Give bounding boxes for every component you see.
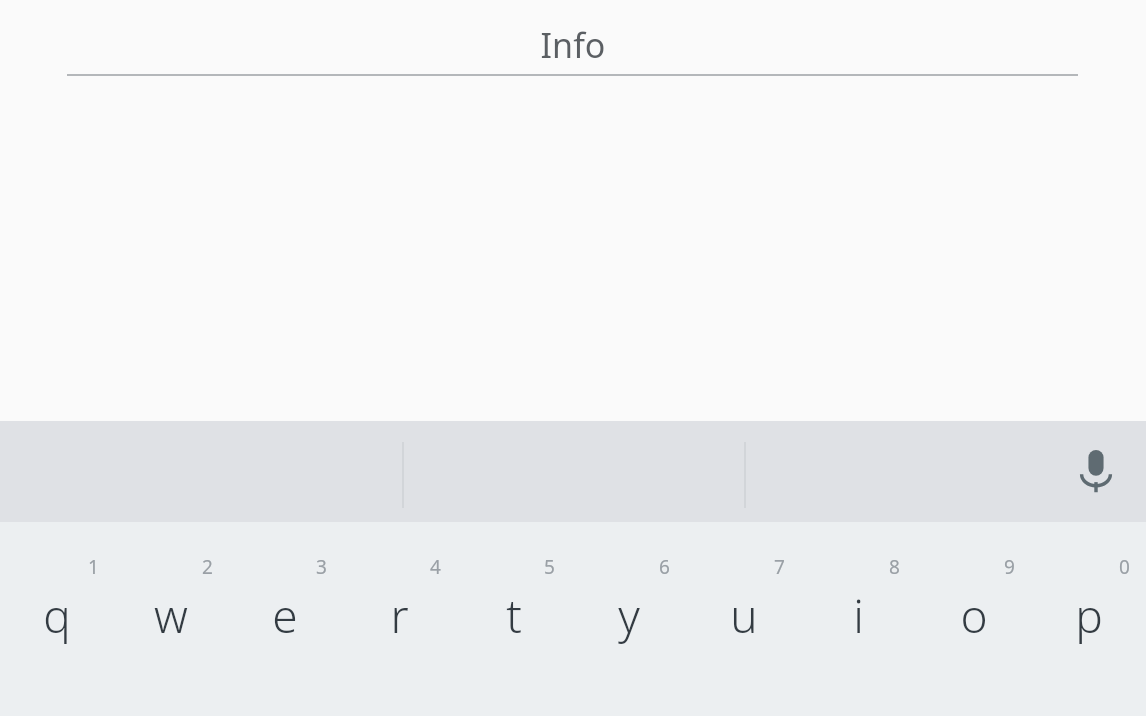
button[interactable]: 7 bbox=[686, 522, 801, 716]
button[interactable]: 9 bbox=[916, 522, 1031, 716]
staticText: 7 bbox=[774, 554, 785, 580]
staticText: 2 bbox=[202, 554, 213, 580]
staticText: t bbox=[506, 584, 522, 647]
button[interactable]: 5 bbox=[456, 522, 571, 716]
staticText: 1 bbox=[88, 554, 99, 580]
staticText: w bbox=[154, 584, 188, 647]
staticText: 0 bbox=[1119, 554, 1130, 580]
staticText: q bbox=[43, 584, 71, 647]
staticText: Info bbox=[0, 22, 1146, 68]
staticText: u bbox=[730, 584, 758, 647]
button[interactable]: 6 bbox=[571, 522, 686, 716]
staticText: r bbox=[390, 584, 409, 647]
button[interactable]: 4 bbox=[342, 522, 456, 716]
button[interactable]: 0 bbox=[1031, 522, 1146, 716]
staticText: 4 bbox=[430, 554, 441, 580]
staticText: i bbox=[853, 584, 864, 647]
staticText: 3 bbox=[316, 554, 327, 580]
button[interactable]: Voice input bbox=[1045, 421, 1146, 522]
staticText: y bbox=[618, 584, 640, 647]
staticText: 9 bbox=[1004, 554, 1015, 580]
button[interactable]: 8 bbox=[801, 522, 916, 716]
button[interactable]: 2 bbox=[114, 522, 228, 716]
staticText: p bbox=[1075, 584, 1103, 647]
staticText: e bbox=[272, 584, 298, 647]
staticText: 5 bbox=[544, 554, 555, 580]
button[interactable]: 3 bbox=[228, 522, 342, 716]
staticText: o bbox=[960, 584, 988, 647]
staticText: 8 bbox=[889, 554, 900, 580]
staticText: 6 bbox=[659, 554, 670, 580]
button[interactable]: 1 bbox=[0, 522, 114, 716]
